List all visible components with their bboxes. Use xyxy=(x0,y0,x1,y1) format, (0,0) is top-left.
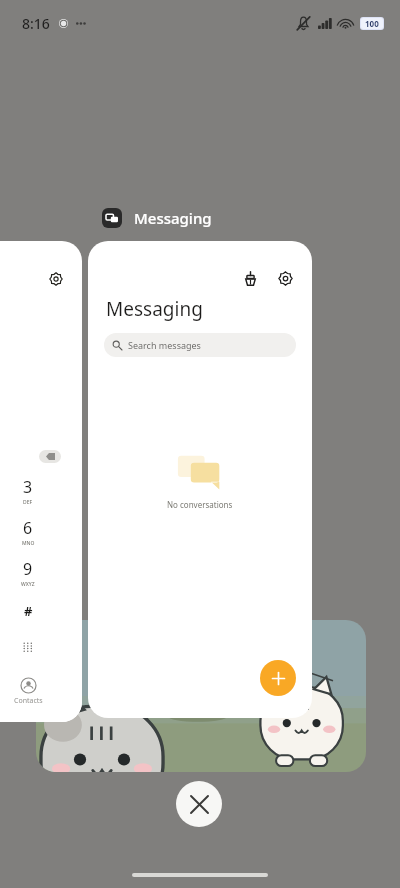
button[interactable] xyxy=(36,620,366,772)
staticText: Search messages xyxy=(128,339,201,351)
staticText: DEF xyxy=(23,499,33,506)
staticText: WXYZ xyxy=(21,581,35,588)
button[interactable]: New conversation xyxy=(260,660,296,696)
staticText: Contacts xyxy=(14,696,43,706)
button[interactable]: Settings xyxy=(274,267,296,289)
staticText: Messaging xyxy=(134,208,212,228)
staticText: 3 xyxy=(23,476,33,498)
staticText: 8:16 xyxy=(22,14,50,33)
button[interactable]: Keypad xyxy=(15,634,41,660)
staticText: MNO xyxy=(22,540,35,547)
button[interactable]: Backspace xyxy=(39,450,61,463)
button[interactable]: Close all xyxy=(176,781,222,827)
staticText: # xyxy=(24,602,33,620)
button[interactable]: # xyxy=(11,600,45,622)
staticText: 9 xyxy=(23,558,33,580)
staticText: 100 xyxy=(365,18,379,29)
button[interactable]: 9 xyxy=(10,558,46,588)
button[interactable]: Search messages xyxy=(104,333,296,357)
button[interactable]: 6 xyxy=(10,517,46,547)
button[interactable]: Settings xyxy=(46,269,66,289)
button[interactable]: Clean up xyxy=(88,241,312,718)
staticText: 6 xyxy=(23,517,33,539)
button[interactable]: 3 xyxy=(10,476,46,506)
button[interactable]: Clean up xyxy=(239,267,261,289)
button[interactable]: Settings xyxy=(0,241,82,722)
staticText: Messaging xyxy=(106,296,203,322)
button[interactable]: Contacts xyxy=(14,678,43,706)
staticText: No conversations xyxy=(167,499,233,510)
button[interactable]: Messaging xyxy=(102,208,212,228)
